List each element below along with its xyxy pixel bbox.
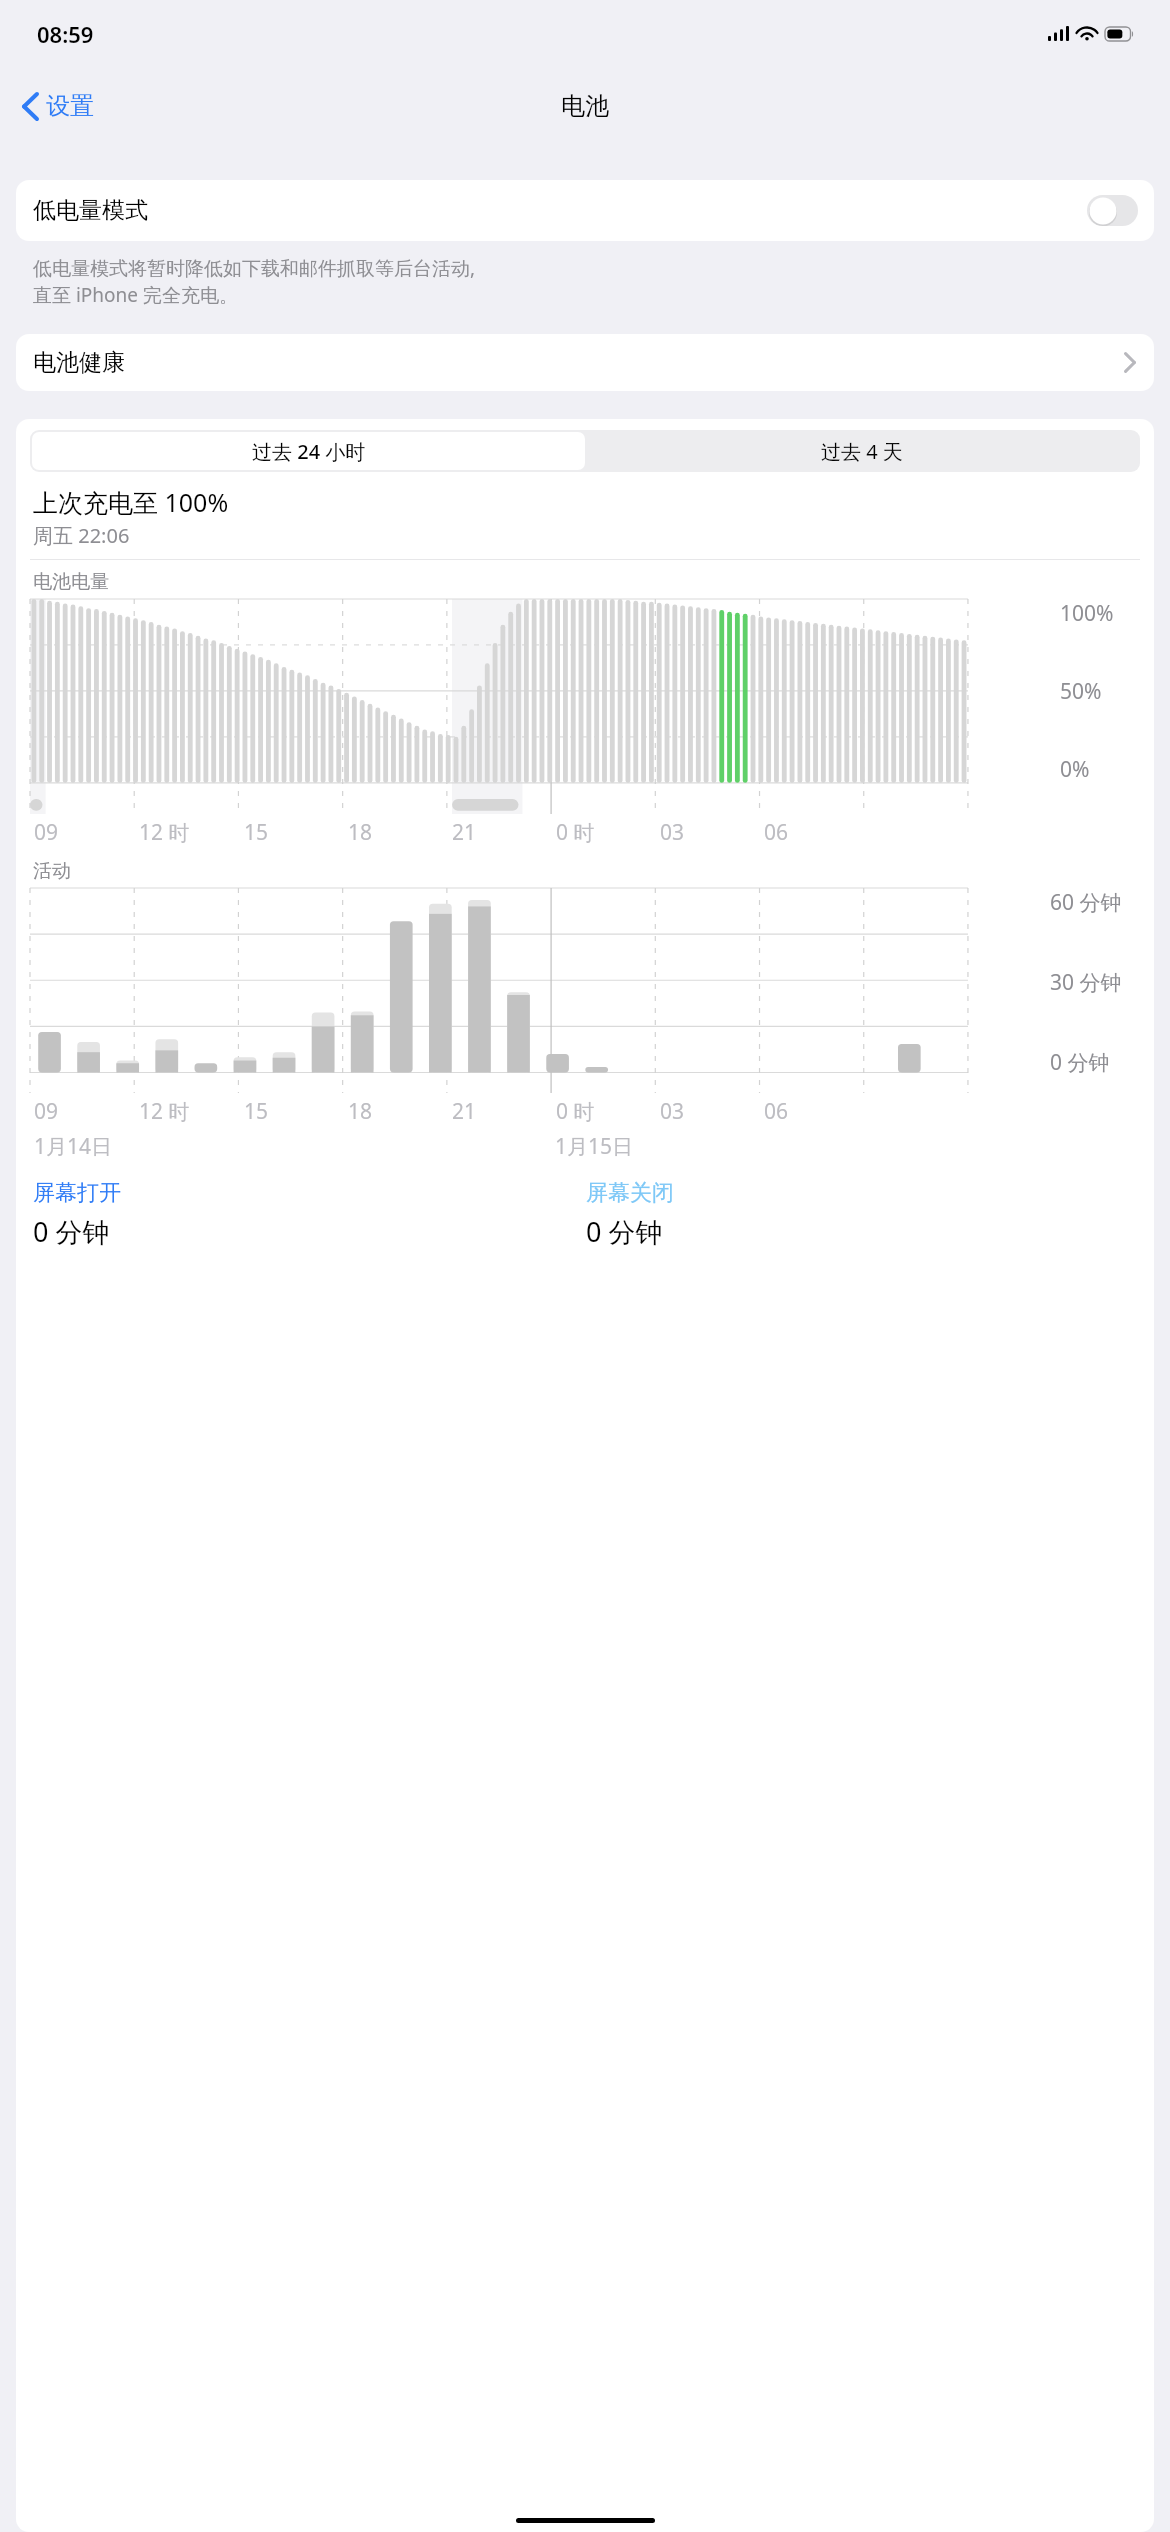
staticText: 18 xyxy=(348,1097,373,1126)
staticText: 电池 xyxy=(561,91,609,121)
staticText: 50% xyxy=(1060,677,1102,706)
staticText: 21 xyxy=(452,1097,477,1126)
staticText: 12 时 xyxy=(139,818,190,847)
staticText: 1月15日 xyxy=(555,1132,634,1161)
staticText: 过去 24 小时 xyxy=(252,438,366,465)
staticText: 低电量模式将暂时降低如下载和邮件抓取等后台活动, 直至 iPhone 完全充电。 xyxy=(33,255,476,308)
staticText: 0 分钟 xyxy=(1050,1048,1110,1077)
button[interactable]: 屏幕打开 xyxy=(33,1179,586,1250)
staticText: 15 xyxy=(244,818,269,847)
staticText: 0% xyxy=(1060,755,1090,784)
staticText: 0 分钟 xyxy=(586,1213,663,1250)
staticText: 21 xyxy=(452,818,477,847)
staticText: 15 xyxy=(244,1097,269,1126)
staticText: 活动 xyxy=(33,859,71,883)
button[interactable]: 低电量模式开关 xyxy=(1087,195,1138,226)
staticText: 12 时 xyxy=(139,1097,190,1126)
staticText: 03 xyxy=(660,818,685,847)
staticText: 03 xyxy=(660,1097,685,1126)
staticText: 电池电量 xyxy=(33,570,109,594)
staticText: 设置 xyxy=(46,91,94,121)
staticText: 低电量模式 xyxy=(33,196,148,225)
button[interactable]: 设置 xyxy=(12,83,104,129)
staticText: 屏幕关闭 xyxy=(586,1179,674,1207)
staticText: 60 分钟 xyxy=(1050,888,1122,917)
staticText: 09 xyxy=(34,1097,59,1126)
staticText: 18 xyxy=(348,818,373,847)
staticText: 过去 4 天 xyxy=(821,438,903,465)
button[interactable]: 过去 4 天 xyxy=(585,432,1138,470)
staticText: 0 分钟 xyxy=(33,1213,110,1250)
staticText: 电池健康 xyxy=(33,348,125,377)
staticText: 30 分钟 xyxy=(1050,968,1122,997)
staticText: 0 时 xyxy=(556,818,595,847)
button[interactable]: 屏幕关闭 xyxy=(586,1179,1140,1250)
staticText: 100% xyxy=(1060,599,1114,628)
staticText: 屏幕打开 xyxy=(33,1179,121,1207)
button[interactable]: 电池健康 xyxy=(16,334,1154,391)
staticText: 06 xyxy=(764,818,789,847)
staticText: 0 时 xyxy=(556,1097,595,1126)
staticText: 上次充电至 100% xyxy=(33,485,229,519)
button[interactable]: 过去 24 小时 xyxy=(32,432,585,470)
staticText: 1月14日 xyxy=(34,1132,113,1161)
staticText: 06 xyxy=(764,1097,789,1126)
staticText: 09 xyxy=(34,818,59,847)
button[interactable]: 低电量模式 xyxy=(16,180,1154,241)
staticText: 周五 22:06 xyxy=(33,522,130,549)
staticText: 08:59 xyxy=(37,19,94,49)
